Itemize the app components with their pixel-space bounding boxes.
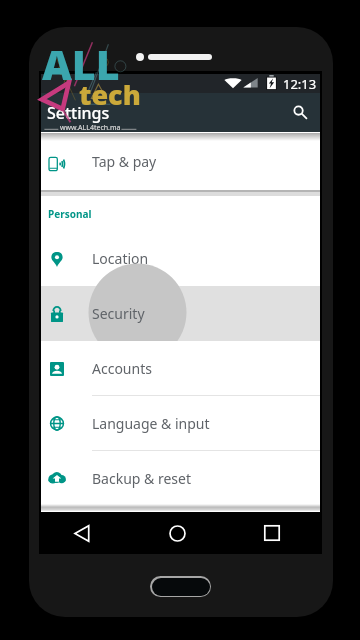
staticText: www.ALL4tech.ma [60,123,121,133]
staticText: Backup & reset [92,469,191,488]
button[interactable]: Back [62,512,102,550]
staticText: Language & input [92,414,210,433]
staticText: Tap & pay [92,152,157,171]
button[interactable]: Recents [252,512,292,550]
staticText: 12:13 [283,75,317,93]
button[interactable]: Backup & reset [41,451,320,505]
staticText: Settings [47,102,110,124]
staticText: tech [79,76,141,113]
staticText: Location [92,249,149,268]
button[interactable]: Location [41,231,320,286]
button[interactable]: Accounts [41,341,320,395]
staticText: ALL [42,36,120,92]
button[interactable]: Language & input [41,396,320,450]
staticText: Security [92,304,145,323]
button[interactable]: Security [41,286,320,341]
button[interactable]: Search [282,93,318,132]
button[interactable]: Home [157,512,197,550]
staticText: Accounts [92,359,152,378]
button[interactable]: Tap & pay [41,133,320,190]
staticText: Personal [48,207,92,221]
